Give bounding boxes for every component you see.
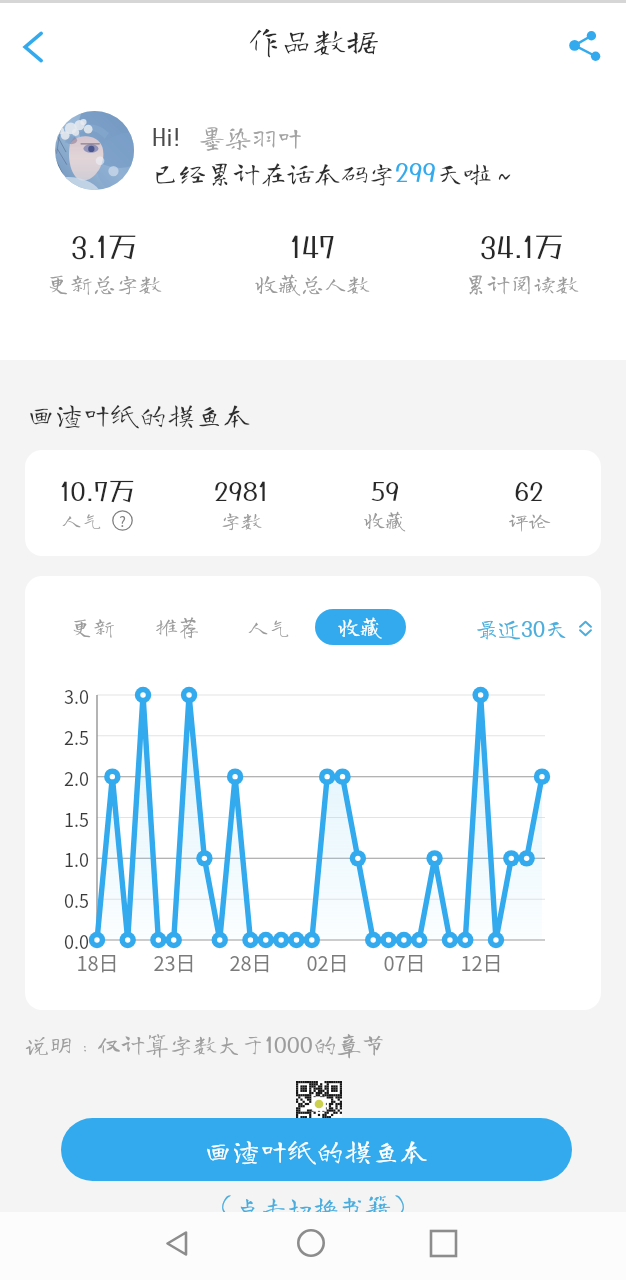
button[interactable]: 147 [208, 230, 417, 295]
staticText: 推荐 [156, 616, 201, 638]
staticText: 画渣叶纸的摸鱼本 [204, 1136, 429, 1164]
staticText: 23日 [153, 948, 196, 977]
staticText: 02日 [306, 948, 349, 977]
staticText: 59 [371, 475, 400, 506]
staticText: 28日 [229, 948, 272, 977]
staticText: 字数 [220, 510, 262, 531]
staticText: 墨染羽叶 [199, 124, 304, 150]
button[interactable]: 3.1万 [0, 230, 208, 295]
button[interactable]: Recents [417, 1217, 469, 1269]
staticText: 人气 [61, 510, 103, 531]
staticText: 评论 [508, 510, 550, 531]
button[interactable]: 画渣叶纸的摸鱼本 [61, 1118, 572, 1181]
staticText: 18日 [76, 948, 119, 977]
button[interactable]: 更新 [58, 609, 128, 645]
staticText: 天啦～ [437, 159, 518, 186]
staticText: 累计阅读数 [464, 272, 579, 295]
button[interactable]: Back [5, 19, 61, 75]
staticText: （点击切换书籍） [209, 1193, 418, 1219]
staticText: 3.0 [64, 683, 89, 709]
staticText: 10.7万 [60, 475, 135, 506]
staticText: 人气 [247, 616, 292, 638]
button[interactable]: 人气 [234, 609, 304, 645]
button[interactable]: Share [555, 18, 611, 74]
staticText: 作品数据 [247, 24, 379, 57]
staticText: 收藏总人数 [255, 272, 370, 295]
staticText: ? [119, 511, 126, 531]
staticText: 收藏 [338, 616, 383, 638]
button[interactable]: 推荐 [143, 609, 213, 645]
staticText: 1.5 [64, 806, 89, 832]
staticText: 最近30天 [475, 616, 569, 641]
button[interactable]: 2981 [169, 475, 313, 531]
staticText: 2981 [214, 475, 269, 506]
staticText: 更新 [71, 616, 116, 638]
staticText: 147 [290, 230, 336, 264]
button[interactable]: 最近30天 [471, 610, 598, 647]
button[interactable]: 收藏 [315, 609, 406, 645]
button[interactable]: Avatar [55, 111, 134, 190]
button[interactable]: 62 [457, 475, 601, 531]
staticText: 2.5 [64, 724, 89, 750]
staticText: 07日 [383, 948, 426, 977]
button[interactable]: 34.1万 [417, 230, 626, 295]
staticText: 收藏 [364, 510, 406, 531]
button[interactable]: Home [285, 1217, 337, 1269]
staticText: 2.0 [64, 765, 89, 791]
button[interactable]: Back [151, 1217, 203, 1269]
button[interactable]: 10.7万 [25, 475, 169, 531]
staticText: 12日 [460, 948, 503, 977]
staticText: 已经累计在话本码字 [152, 159, 395, 186]
staticText: 34.1万 [480, 230, 564, 264]
staticText: 说明：仅计算字数大于1000的章节 [25, 1031, 385, 1057]
staticText: Hi! [152, 122, 181, 150]
staticText: 0.5 [64, 887, 89, 913]
staticText: 1.0 [64, 846, 89, 872]
staticText: 62 [514, 475, 544, 506]
staticText: 画渣叶纸的摸鱼本 [27, 400, 252, 428]
button[interactable]: 59 [313, 475, 457, 531]
staticText: 3.1万 [71, 230, 137, 264]
staticText: 0.0 [64, 928, 89, 954]
staticText: 299 [395, 157, 437, 186]
staticText: 更新总字数 [47, 272, 162, 295]
